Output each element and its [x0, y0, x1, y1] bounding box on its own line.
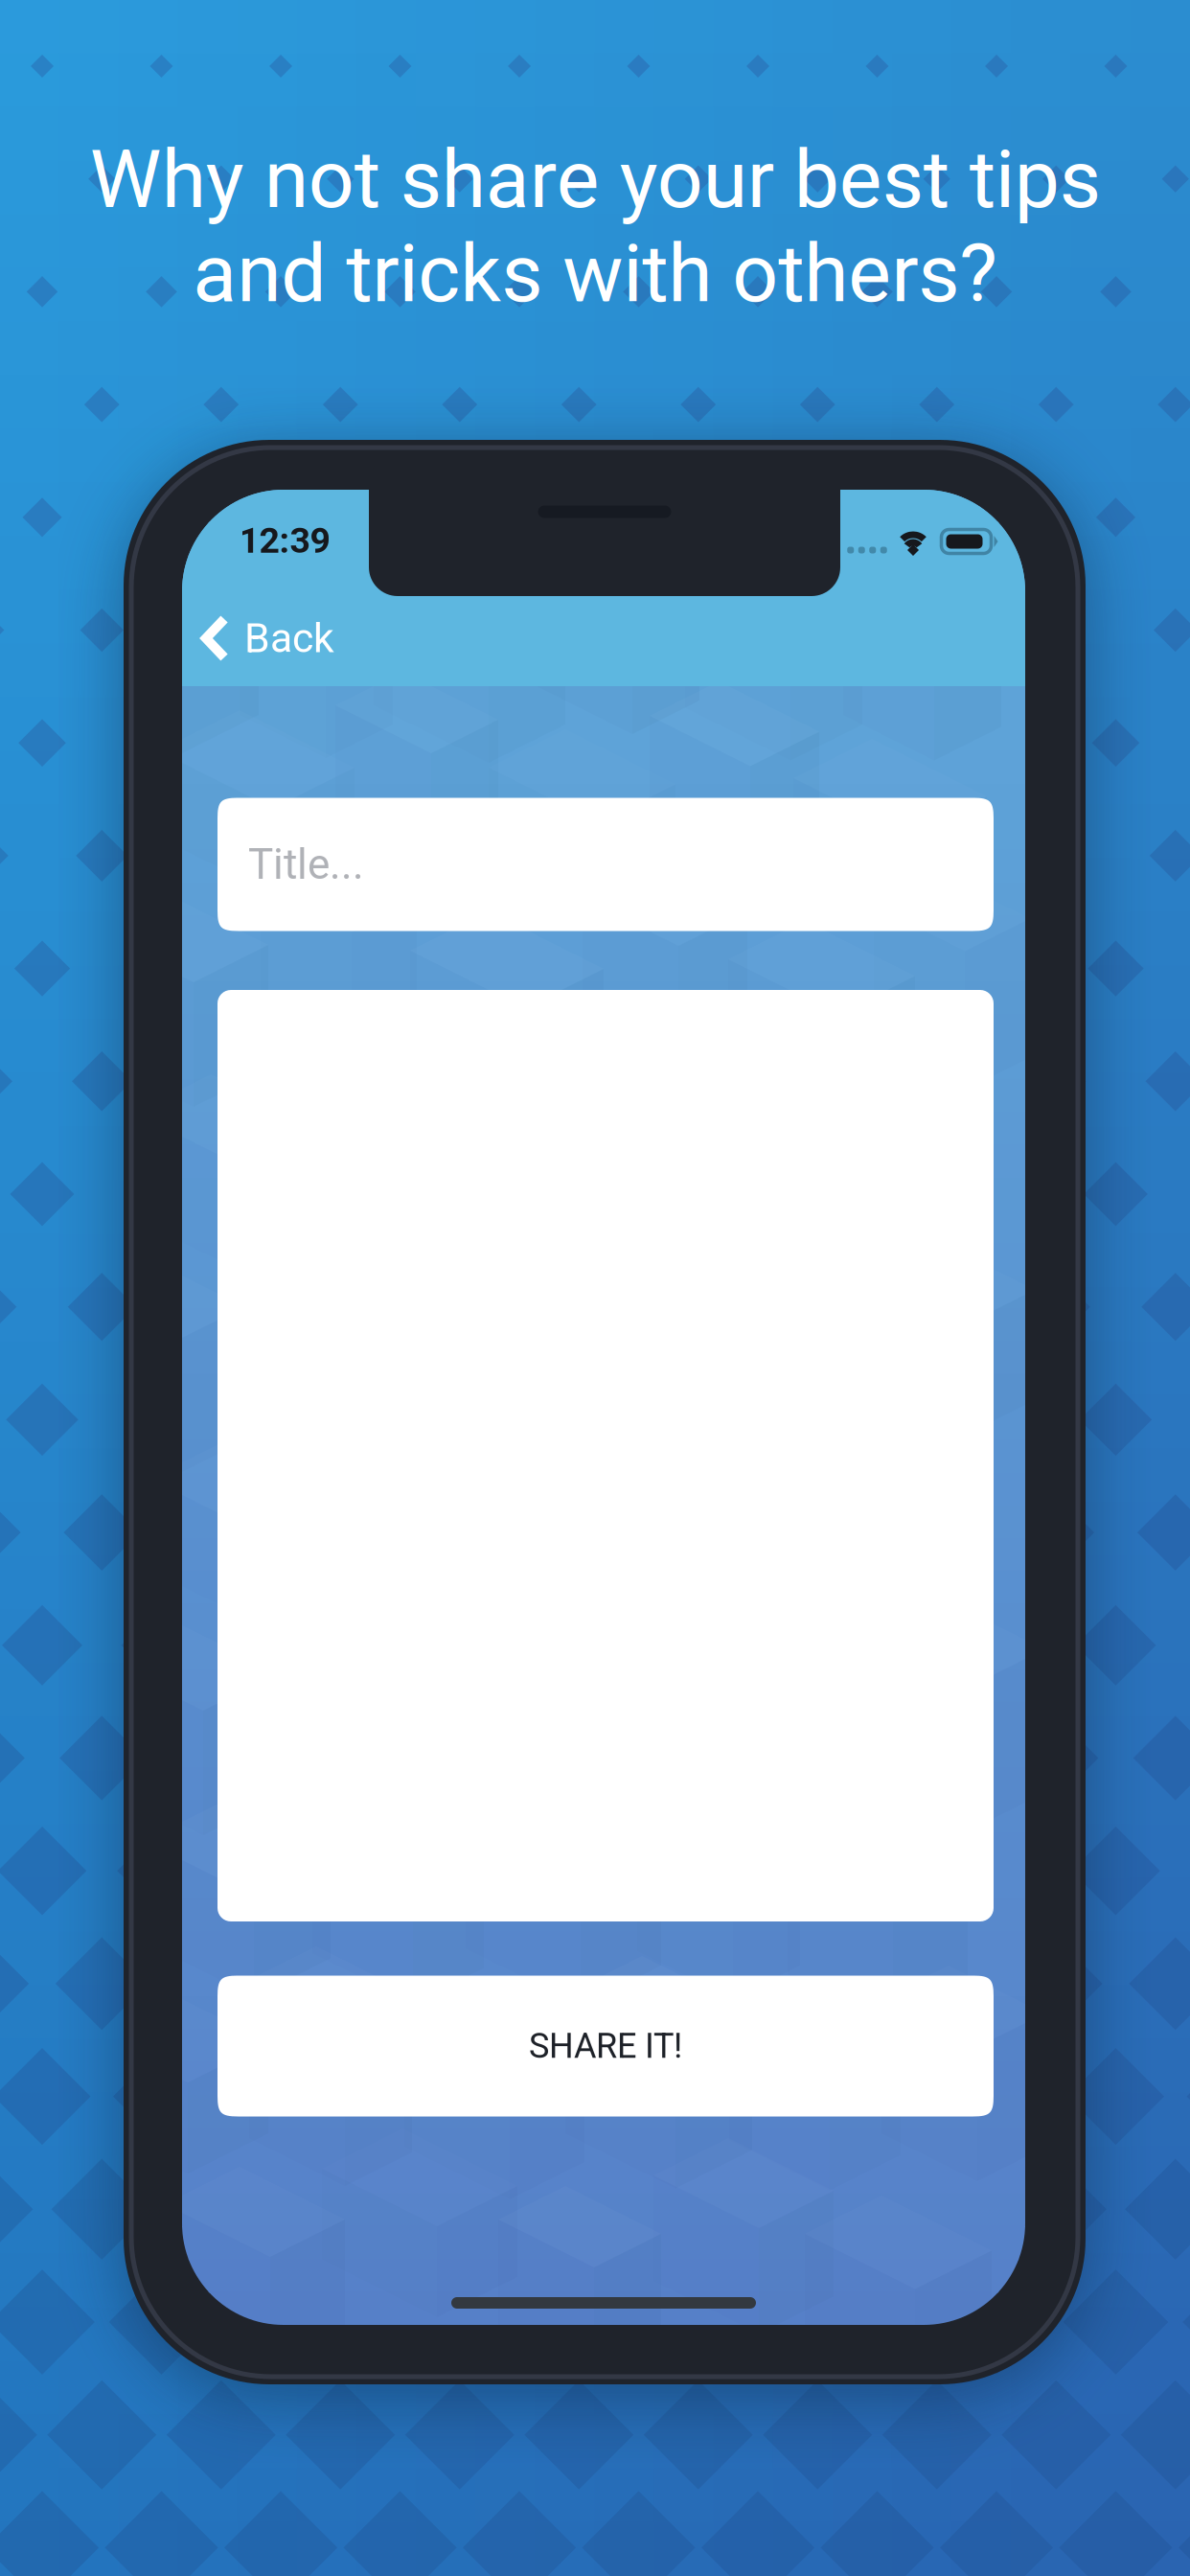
staticText: Why not share your best tips and tricks …	[90, 132, 1100, 321]
button[interactable]: Back	[182, 592, 469, 684]
staticText: Title...	[248, 840, 364, 889]
button[interactable]: SHARE IT!	[217, 1976, 994, 2116]
staticText: 12:39	[239, 520, 330, 561]
staticText: Back	[244, 614, 334, 662]
staticText: SHARE IT!	[529, 2026, 682, 2066]
button[interactable]: Title...	[217, 798, 994, 931]
